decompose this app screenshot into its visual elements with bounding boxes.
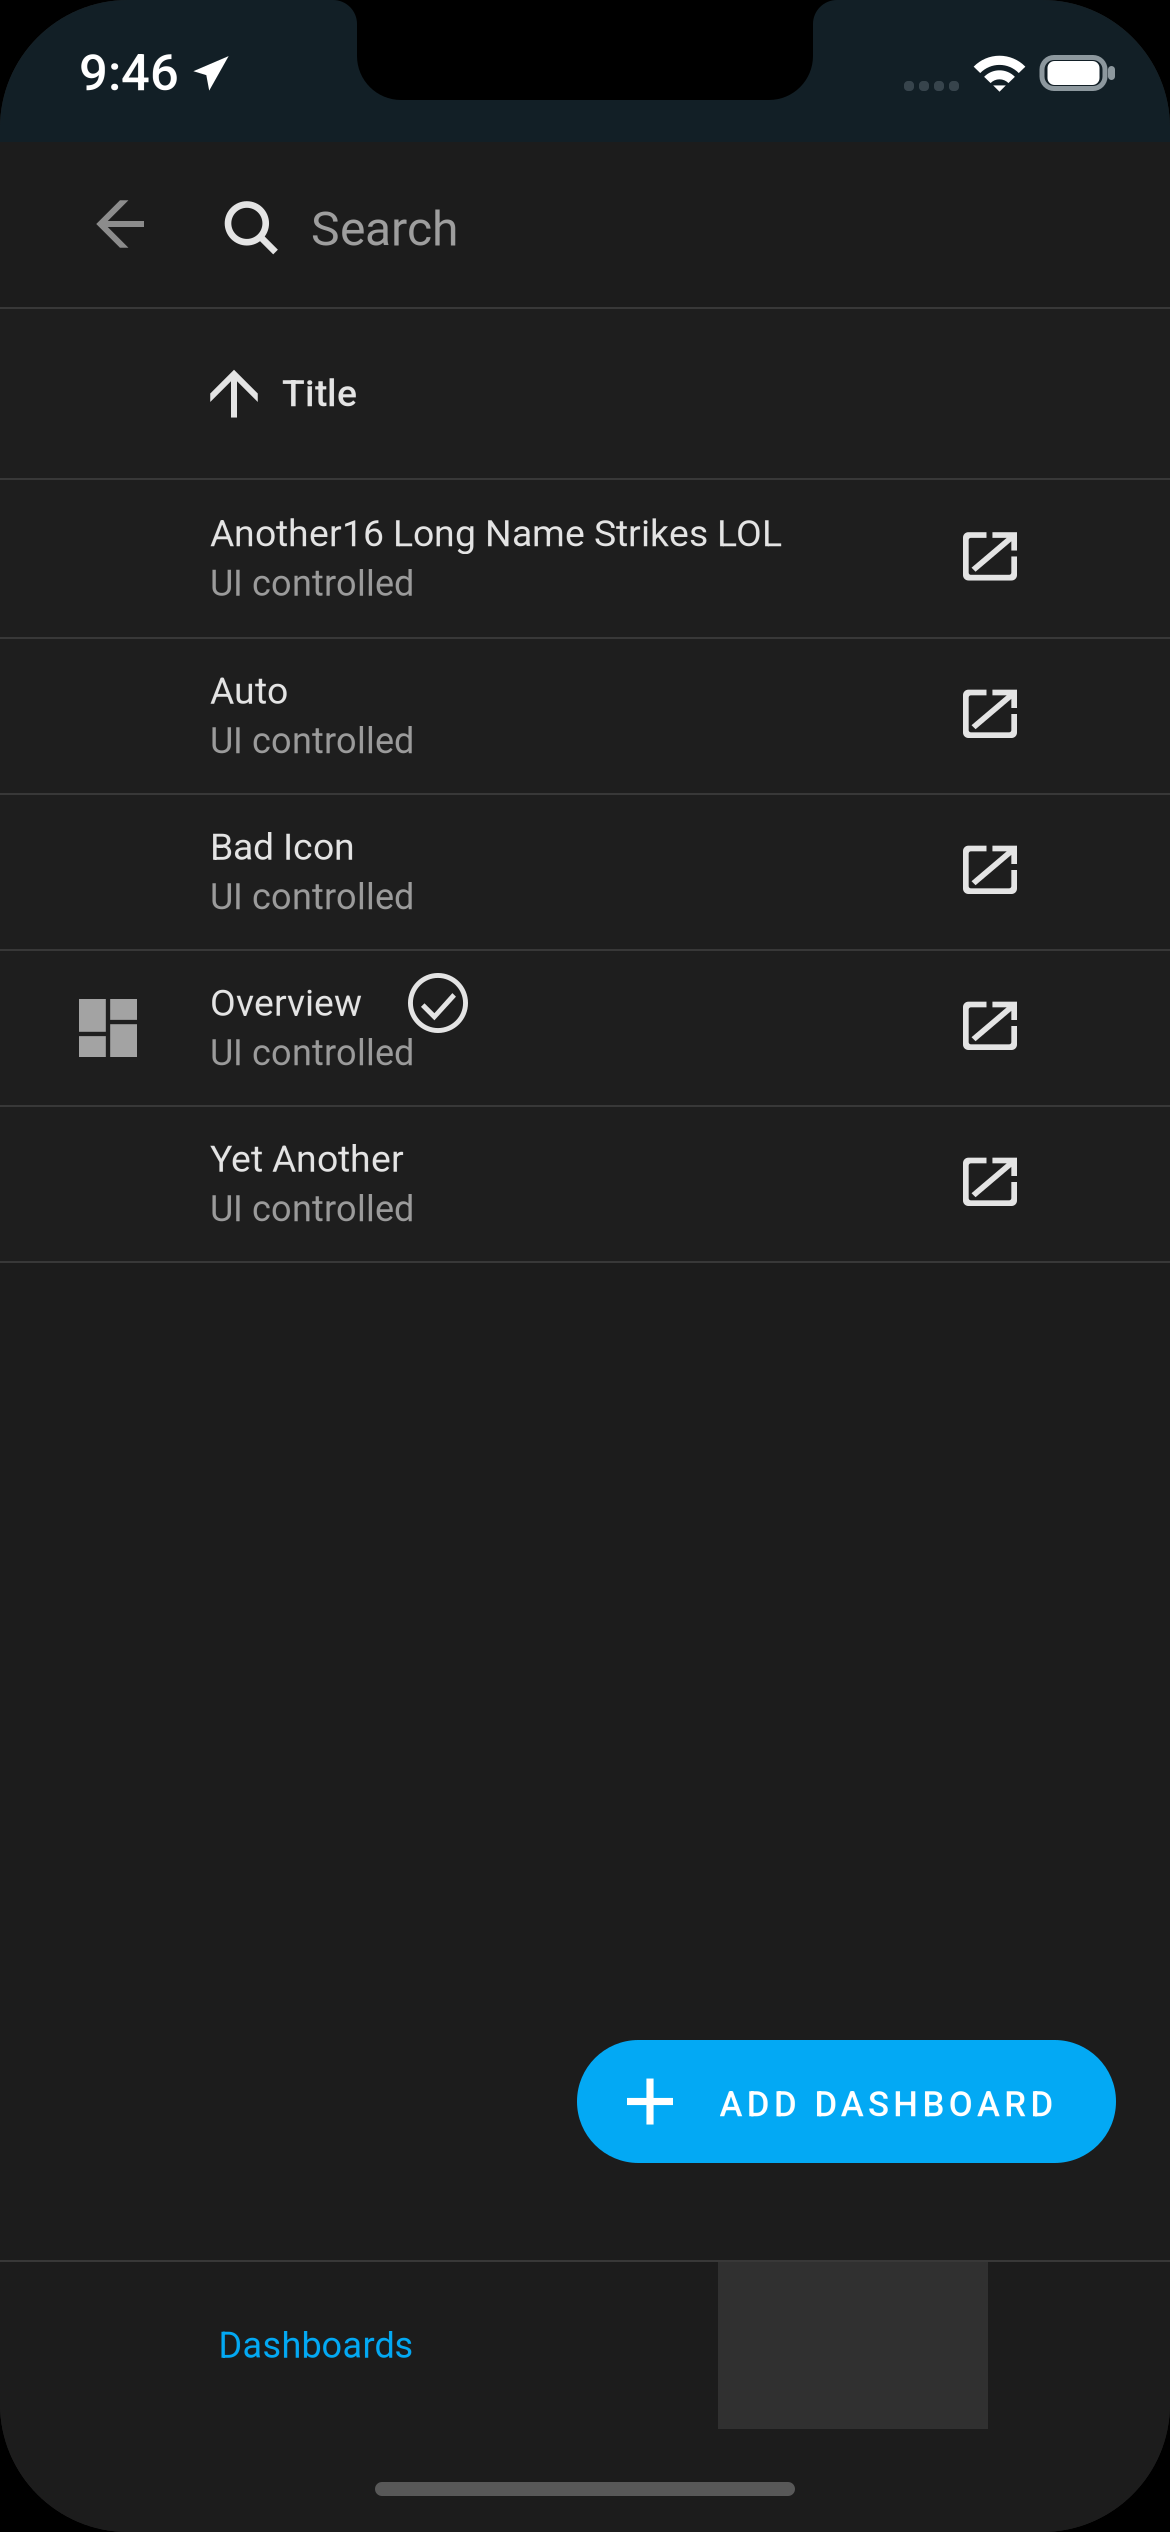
staticText: UI controlled [210,562,414,605]
staticText: Title [282,372,357,415]
button[interactable]: Back [68,172,172,276]
staticText: UI controlled [210,876,414,918]
staticText: Search [311,201,458,257]
staticText: Bad Icon [210,825,355,869]
button[interactable]: Dashboards [101,2262,531,2429]
button[interactable]: Title [0,309,1170,478]
staticText: Dashboards [218,2324,413,2367]
button[interactable]: Another16 Long Name Strikes LOL [0,480,1170,637]
staticText: 9:46 [79,43,179,103]
staticText: UI controlled [210,1032,414,1074]
button[interactable]: Search [228,174,1108,284]
button[interactable]: ADD DASHBOARD [577,2040,1116,2163]
staticText: UI controlled [210,1188,414,1230]
staticText: Yet Another [210,1137,404,1181]
button[interactable]: Overview [0,951,1170,1105]
staticText: Overview [210,981,362,1025]
staticText: Auto [210,669,288,713]
button[interactable]: Yet Another [0,1107,1170,1261]
button[interactable]: Bad Icon [0,795,1170,949]
staticText: ADD DASHBOARD [719,2084,1053,2125]
staticText: UI controlled [210,720,414,762]
staticText: Another16 Long Name Strikes LOL [210,512,782,555]
button[interactable]: Auto [0,639,1170,793]
